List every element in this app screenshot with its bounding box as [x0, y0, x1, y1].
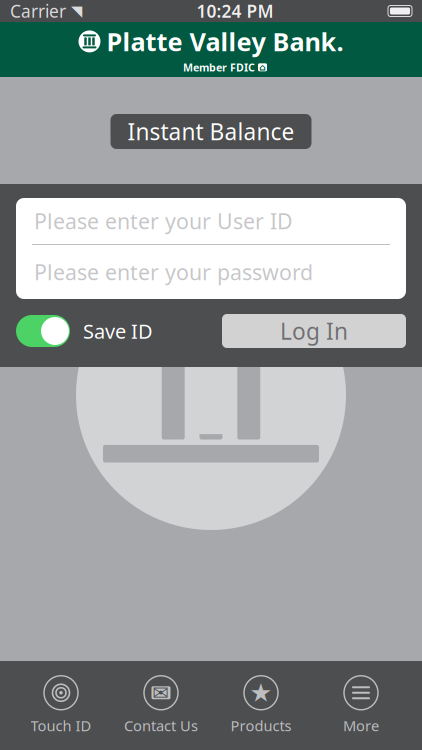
- staticText: Log In: [280, 316, 348, 346]
- button[interactable]: More: [311, 670, 411, 740]
- staticText: Please enter your password: [34, 258, 313, 286]
- staticText: ⌂: [259, 62, 266, 73]
- staticText: Contact Us: [124, 716, 198, 735]
- button[interactable]: ✉: [111, 670, 211, 740]
- staticText: ★: [249, 678, 272, 707]
- staticText: Member FDIC: [183, 60, 255, 74]
- staticText: ✉: [152, 681, 169, 704]
- staticText: Platte Valley Bank.: [106, 25, 343, 58]
- staticText: Products: [230, 716, 291, 735]
- button[interactable]: ★: [211, 670, 311, 740]
- staticText: Touch ID: [30, 716, 91, 735]
- staticText: Save ID: [83, 318, 153, 344]
- staticText: Please enter your User ID: [34, 207, 293, 235]
- button[interactable]: Touch ID: [11, 670, 111, 740]
- button[interactable]: Instant Balance: [110, 114, 311, 149]
- button[interactable]: Save ID: [16, 315, 153, 347]
- staticText: Instant Balance: [127, 116, 294, 146]
- button[interactable]: Log In: [222, 314, 406, 348]
- staticText: 10:24 PM: [196, 0, 273, 22]
- staticText: ◥: [71, 3, 82, 19]
- staticText: Carrier: [10, 0, 66, 22]
- staticText: More: [343, 716, 379, 735]
